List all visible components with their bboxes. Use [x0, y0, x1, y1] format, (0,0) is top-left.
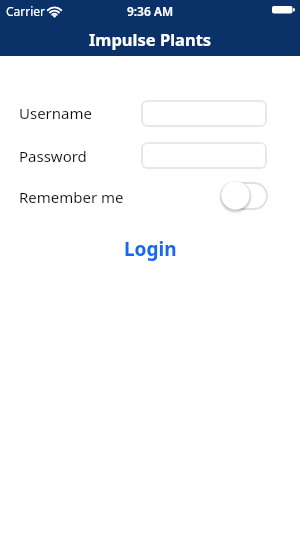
button[interactable]: [141, 142, 267, 169]
staticText: Impulse Plants: [0, 28, 300, 50]
staticText: Password: [19, 146, 87, 166]
button[interactable]: [141, 100, 267, 127]
staticText: Login: [124, 236, 177, 262]
button[interactable]: [221, 181, 269, 212]
staticText: 9:36 AM: [0, 3, 300, 19]
staticText: Username: [19, 103, 92, 123]
staticText: Carrier: [6, 3, 46, 19]
button[interactable]: Login: [116, 234, 185, 264]
staticText: Remember me: [19, 187, 124, 207]
